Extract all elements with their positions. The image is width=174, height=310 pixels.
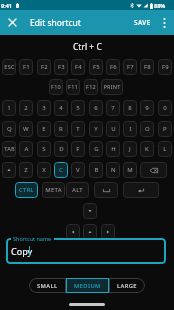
button[interactable]: M: [123, 162, 137, 178]
staticText: C: [59, 166, 63, 174]
button[interactable]: 0: [158, 100, 172, 116]
button[interactable]: More options: [155, 10, 174, 35]
button[interactable]: F2: [37, 59, 51, 75]
button[interactable]: PRINT: [101, 79, 123, 95]
button[interactable]: TAB: [2, 141, 16, 157]
button[interactable]: Close: [2, 10, 22, 35]
button[interactable]: 1: [2, 100, 16, 116]
staticText: T: [76, 125, 80, 133]
staticText: TAB: [4, 145, 15, 153]
button[interactable]: F6: [106, 59, 120, 75]
button[interactable]: Backspace: [140, 162, 167, 178]
staticText: Copy: [11, 245, 33, 257]
button[interactable]: A: [19, 141, 33, 157]
button[interactable]: 9: [140, 100, 154, 116]
staticText: D: [59, 145, 64, 153]
staticText: K: [145, 145, 149, 153]
button[interactable]: Q: [2, 121, 16, 137]
staticText: F5: [93, 63, 100, 71]
button[interactable]: G: [89, 141, 103, 157]
button[interactable]: D: [54, 141, 68, 157]
button[interactable]: 6: [89, 100, 103, 116]
button[interactable]: Left: [66, 224, 80, 240]
button[interactable]: T: [71, 121, 85, 137]
button[interactable]: Z: [19, 162, 33, 178]
button[interactable]: K: [140, 141, 154, 157]
button[interactable]: F5: [89, 59, 103, 75]
button[interactable]: O: [140, 121, 154, 137]
staticText: ALT: [72, 186, 83, 194]
staticText: F1: [23, 63, 30, 71]
button[interactable]: F: [71, 141, 85, 157]
button[interactable]: MEDIUM: [66, 278, 109, 293]
button[interactable]: F3: [54, 59, 68, 75]
button[interactable]: ALT: [66, 182, 89, 198]
button[interactable]: 4: [54, 100, 68, 116]
button[interactable]: J: [123, 141, 137, 157]
staticText: Shortcut name: [13, 235, 52, 242]
button[interactable]: F12: [84, 79, 98, 95]
staticText: S: [42, 145, 46, 153]
button[interactable]: ESC: [2, 59, 16, 75]
staticText: Edit shortcut: [30, 17, 81, 29]
button[interactable]: Enter: [123, 182, 159, 198]
staticText: H: [111, 145, 116, 153]
button[interactable]: U: [106, 121, 120, 137]
button[interactable]: F10: [49, 79, 63, 95]
button[interactable]: E: [37, 121, 51, 137]
staticText: CTRL: [19, 186, 34, 194]
button[interactable]: C: [54, 162, 68, 178]
staticText: E: [42, 125, 46, 133]
button[interactable]: F9: [158, 59, 172, 75]
button[interactable]: Up: [83, 203, 97, 219]
staticText: SMALL: [37, 282, 58, 290]
button[interactable]: F7: [123, 59, 137, 75]
button[interactable]: LARGE: [109, 278, 145, 293]
button[interactable]: R: [54, 121, 68, 137]
staticText: F10: [51, 83, 61, 91]
button[interactable]: 5: [71, 100, 85, 116]
button[interactable]: F1: [19, 59, 33, 75]
staticText: X: [42, 166, 46, 174]
staticText: F9: [162, 63, 169, 71]
button[interactable]: Down: [83, 224, 97, 240]
staticText: 6: [94, 104, 98, 112]
button[interactable]: Space: [94, 182, 118, 198]
button[interactable]: 8: [123, 100, 137, 116]
button[interactable]: SMALL: [29, 278, 66, 293]
staticText: Z: [24, 166, 28, 174]
staticText: MEDIUM: [74, 282, 101, 290]
button[interactable]: V: [71, 162, 85, 178]
button[interactable]: Right: [101, 224, 115, 240]
button[interactable]: F11: [66, 79, 80, 95]
button[interactable]: W: [19, 121, 33, 137]
button[interactable]: X: [37, 162, 51, 178]
button[interactable]: B: [89, 162, 103, 178]
button[interactable]: L: [158, 141, 172, 157]
button[interactable]: N: [106, 162, 120, 178]
staticText: M: [127, 166, 133, 174]
button[interactable]: CTRL: [15, 182, 38, 198]
staticText: Ctrl + C: [73, 41, 102, 53]
button[interactable]: Shift: [2, 162, 16, 178]
staticText: SAVE: [134, 18, 151, 27]
staticText: 0: [163, 104, 167, 112]
button[interactable]: I: [123, 121, 137, 137]
staticText: META: [45, 186, 62, 194]
staticText: 2: [24, 104, 28, 112]
button[interactable]: F8: [140, 59, 154, 75]
button[interactable]: Copy: [6, 238, 166, 264]
button[interactable]: 2: [19, 100, 33, 116]
button[interactable]: 3: [37, 100, 51, 116]
button[interactable]: SAVE: [130, 10, 155, 35]
button[interactable]: Y: [89, 121, 103, 137]
button[interactable]: META: [42, 182, 65, 198]
button[interactable]: F4: [71, 59, 85, 75]
staticText: Y: [94, 125, 98, 133]
button[interactable]: P: [158, 121, 172, 137]
button[interactable]: H: [106, 141, 120, 157]
button[interactable]: 7: [106, 100, 120, 116]
button[interactable]: S: [37, 141, 51, 157]
staticText: 4: [59, 104, 63, 112]
staticText: F6: [110, 63, 117, 71]
